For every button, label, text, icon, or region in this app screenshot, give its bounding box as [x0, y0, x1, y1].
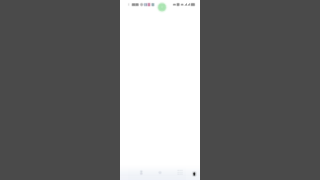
button[interactable]: Bookmarks [153, 166, 167, 180]
button[interactable]: More options [187, 166, 200, 180]
button[interactable]: System status [170, 0, 198, 9]
button[interactable]: Tabs [172, 166, 186, 180]
button[interactable]: Clock [124, 0, 142, 9]
button[interactable]: Account [134, 166, 148, 180]
